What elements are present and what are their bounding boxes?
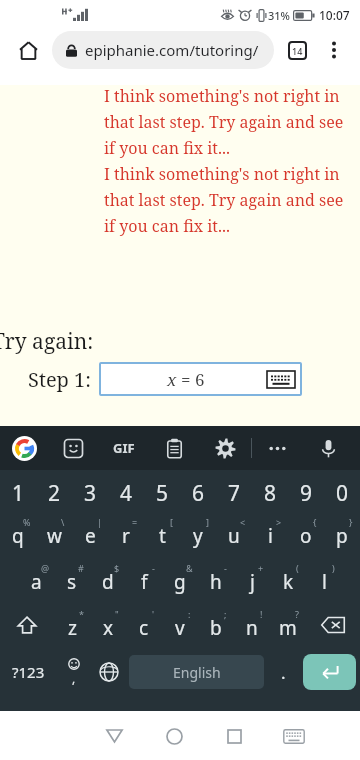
- button[interactable]: epiphanie.com/tutoring/: [52, 31, 274, 69]
- button[interactable]: f: [126, 556, 162, 602]
- button[interactable]: More options: [316, 32, 352, 68]
- button[interactable]: 2: [36, 476, 72, 510]
- button[interactable]: t: [144, 510, 180, 556]
- button[interactable]: c: [126, 602, 162, 648]
- button[interactable]: 6: [180, 476, 216, 510]
- staticText: 14: [292, 45, 303, 57]
- button[interactable]: u: [216, 510, 252, 556]
- button[interactable]: Next Step: [41, 463, 129, 492]
- staticText: 8: [264, 479, 277, 508]
- staticText: -: [224, 562, 227, 574]
- staticText: m: [279, 615, 297, 641]
- button[interactable]: m: [270, 602, 306, 648]
- staticText: if you can fix it...: [104, 215, 230, 241]
- staticText: 4: [120, 479, 133, 508]
- button[interactable]: Enter: [303, 654, 356, 690]
- button[interactable]: Done: [198, 463, 253, 492]
- button[interactable]: e: [72, 510, 108, 556]
- button[interactable]: h: [198, 556, 234, 602]
- staticText: !: [260, 608, 263, 620]
- button[interactable]: Keyboard settings: [200, 426, 251, 470]
- staticText: ]: [206, 516, 209, 528]
- button[interactable]: i: [252, 510, 288, 556]
- button[interactable]: Stickers: [48, 426, 98, 470]
- button[interactable]: Google search: [0, 426, 48, 470]
- button[interactable]: Shift: [0, 602, 54, 648]
- button[interactable]: Switch tabs, 14 open: [278, 31, 316, 69]
- button[interactable]: Back: [84, 714, 144, 758]
- button[interactable]: 4: [108, 476, 144, 510]
- staticText: e: [85, 523, 96, 549]
- button[interactable]: GIF: [98, 426, 149, 470]
- staticText: o: [300, 523, 312, 549]
- button[interactable]: 0: [324, 476, 360, 510]
- button[interactable]: English: [129, 655, 264, 689]
- staticText: -: [152, 562, 155, 574]
- button[interactable]: o: [288, 510, 324, 556]
- button[interactable]: Home: [144, 714, 204, 758]
- button[interactable]: g: [162, 556, 198, 602]
- staticText: +: [258, 562, 264, 574]
- staticText: 2: [48, 479, 61, 508]
- staticText: u: [228, 523, 240, 549]
- staticText: &: [186, 562, 193, 574]
- button[interactable]: a: [18, 556, 54, 602]
- button[interactable]: More options: [252, 426, 303, 470]
- staticText: Try again:: [0, 327, 94, 356]
- button[interactable]: z: [54, 602, 90, 648]
- button[interactable]: Emoji and comma: [56, 648, 91, 696]
- staticText: ": [115, 608, 119, 620]
- button[interactable]: x: [90, 602, 126, 648]
- button[interactable]: Voice input: [303, 426, 354, 470]
- staticText: b: [210, 615, 222, 641]
- button[interactable]: s: [54, 556, 90, 602]
- button[interactable]: Hide keyboard: [264, 714, 324, 758]
- button[interactable]: p: [324, 510, 360, 556]
- button[interactable]: n: [234, 602, 270, 648]
- button[interactable]: k: [270, 556, 306, 602]
- button[interactable]: Show math keyboard: [266, 370, 296, 389]
- staticText: r: [122, 523, 130, 549]
- button[interactable]: 7: [216, 476, 252, 510]
- button[interactable]: Recent apps: [204, 714, 264, 758]
- staticText: ;: [224, 608, 227, 620]
- button[interactable]: Backspace: [306, 602, 360, 648]
- button[interactable]: ?123: [0, 648, 56, 696]
- staticText: {: [313, 516, 317, 528]
- button[interactable]: l: [306, 556, 342, 602]
- button[interactable]: x: [99, 362, 302, 396]
- staticText: y: [193, 523, 203, 549]
- button[interactable]: .: [267, 648, 299, 696]
- button[interactable]: v: [162, 602, 198, 648]
- button[interactable]: Home page: [8, 30, 48, 70]
- button[interactable]: r: [108, 510, 144, 556]
- staticText: j: [250, 569, 255, 595]
- staticText: that last step. Try again and see: [104, 189, 344, 215]
- staticText: \: [61, 516, 65, 528]
- button[interactable]: j: [234, 556, 270, 602]
- staticText: |: [97, 516, 102, 528]
- button[interactable]: q: [0, 510, 36, 556]
- staticText: =: [132, 516, 138, 528]
- staticText: = 6: [181, 368, 205, 391]
- staticText: 1: [12, 479, 25, 508]
- button[interactable]: y: [180, 510, 216, 556]
- button[interactable]: w: [36, 510, 72, 556]
- staticText: GIF: [113, 439, 135, 457]
- staticText: d: [102, 569, 114, 595]
- button[interactable]: 1: [0, 476, 36, 510]
- button[interactable]: Change language: [91, 648, 126, 696]
- staticText: (: [296, 562, 299, 574]
- staticText: f: [141, 569, 148, 595]
- button[interactable]: 8: [252, 476, 288, 510]
- staticText: Next Step: [49, 467, 122, 489]
- button[interactable]: b: [198, 602, 234, 648]
- button[interactable]: 9: [288, 476, 324, 510]
- button[interactable]: 5: [144, 476, 180, 510]
- button[interactable]: d: [90, 556, 126, 602]
- staticText: a: [31, 569, 42, 595]
- staticText: n: [246, 615, 258, 641]
- button[interactable]: 3: [72, 476, 108, 510]
- button[interactable]: Clipboard: [149, 426, 200, 470]
- staticText: >: [276, 516, 282, 528]
